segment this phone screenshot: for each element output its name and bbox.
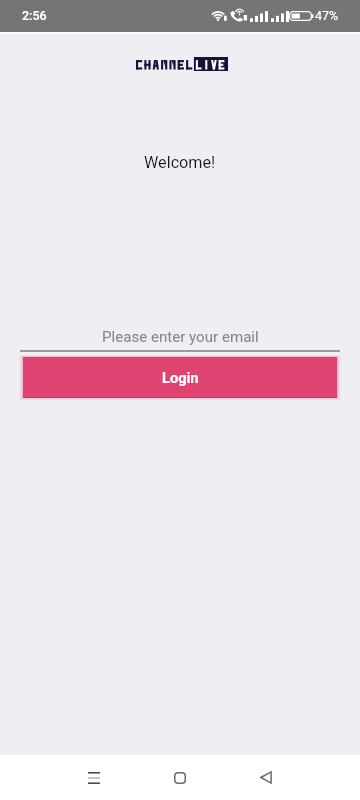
button[interactable]: Back (238, 755, 294, 800)
button[interactable]: Login (23, 357, 337, 397)
staticText: 47% (315, 8, 339, 23)
staticText: Welcome! (144, 153, 216, 172)
staticText: Login (162, 369, 199, 386)
staticText: 2:56 (22, 8, 47, 23)
staticText: Please enter your email (102, 328, 259, 346)
button[interactable]: Home (152, 755, 208, 800)
button[interactable]: Recent apps (66, 755, 122, 800)
